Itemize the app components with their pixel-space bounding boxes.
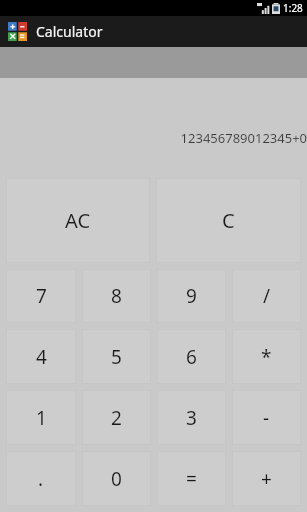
staticText: 6	[186, 344, 197, 370]
button[interactable]: C	[156, 178, 301, 263]
staticText: Calculator	[36, 22, 103, 41]
staticText: *	[261, 344, 272, 370]
staticText: C	[222, 207, 235, 234]
staticText: 1	[36, 405, 47, 431]
staticText: 9	[186, 283, 197, 309]
button[interactable]: AC	[6, 178, 150, 263]
staticText: 8	[111, 283, 122, 309]
button[interactable]: 0	[82, 451, 151, 506]
staticText: 1:28	[283, 1, 303, 15]
staticText: -	[263, 405, 270, 431]
button[interactable]: -	[232, 390, 301, 445]
staticText: /	[263, 283, 271, 309]
button[interactable]: =	[157, 451, 226, 506]
staticText: 7	[36, 283, 47, 309]
button[interactable]: .	[6, 451, 76, 506]
staticText: 2	[111, 405, 122, 431]
button[interactable]: /	[232, 269, 301, 323]
staticText: =	[186, 466, 197, 492]
button[interactable]: 2	[82, 390, 151, 445]
staticText: 3	[186, 405, 197, 431]
button[interactable]: 7	[6, 269, 76, 323]
staticText: 4	[36, 344, 47, 370]
button[interactable]: 4	[6, 329, 76, 384]
button[interactable]: *	[232, 329, 301, 384]
button[interactable]: 9	[157, 269, 226, 323]
button[interactable]: +	[232, 451, 301, 506]
button[interactable]: 5	[82, 329, 151, 384]
staticText: 123456789012345+0	[180, 129, 307, 147]
staticText: 0	[111, 466, 122, 492]
staticText: AC	[65, 207, 91, 234]
staticText: +	[261, 466, 272, 492]
button[interactable]: 1	[6, 390, 76, 445]
button[interactable]: 8	[82, 269, 151, 323]
button[interactable]: 6	[157, 329, 226, 384]
staticText: 5	[111, 344, 122, 370]
button[interactable]: 3	[157, 390, 226, 445]
staticText: .	[38, 466, 44, 492]
